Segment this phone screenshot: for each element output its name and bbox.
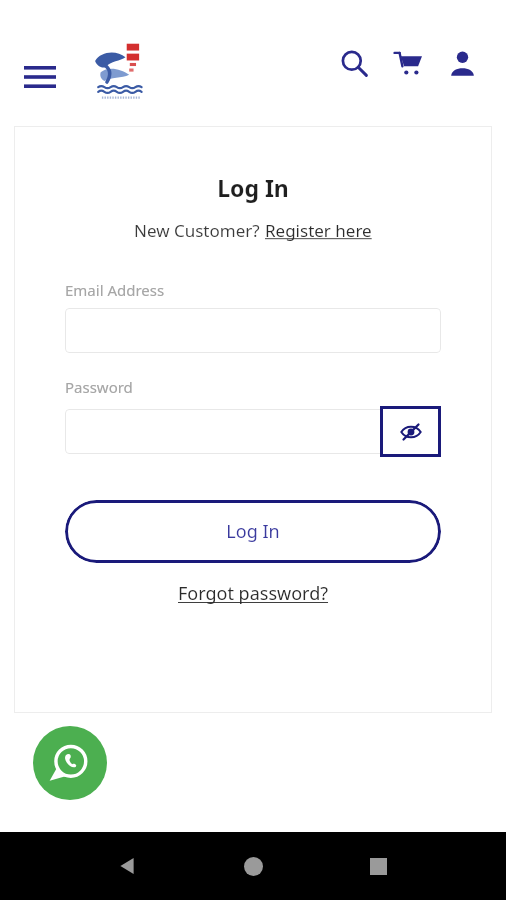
button[interactable]: Register here: [265, 219, 372, 242]
button[interactable]: [65, 409, 441, 454]
button[interactable]: Search: [330, 39, 378, 87]
button[interactable]: Menu: [14, 56, 66, 98]
staticText: New Customer?: [134, 219, 265, 242]
staticText: Email Address: [65, 280, 165, 300]
button[interactable]: Back: [105, 843, 151, 889]
button[interactable]: Account: [438, 39, 486, 87]
button[interactable]: Log In: [65, 500, 441, 563]
button[interactable]: Show password: [380, 406, 441, 457]
button[interactable]: [65, 308, 441, 353]
staticText: Forgot password?: [178, 581, 329, 606]
button[interactable]: Chat on WhatsApp: [33, 726, 107, 800]
staticText: Log In: [217, 172, 289, 203]
button[interactable]: Recent apps: [355, 843, 401, 889]
staticText: Password: [65, 377, 133, 397]
button[interactable]: Cart: [384, 39, 432, 87]
staticText: Log In: [226, 519, 280, 544]
staticText: Register here: [265, 219, 372, 242]
button[interactable]: Home: [92, 40, 154, 102]
button[interactable]: Home: [230, 843, 276, 889]
button[interactable]: Forgot password?: [178, 581, 329, 606]
